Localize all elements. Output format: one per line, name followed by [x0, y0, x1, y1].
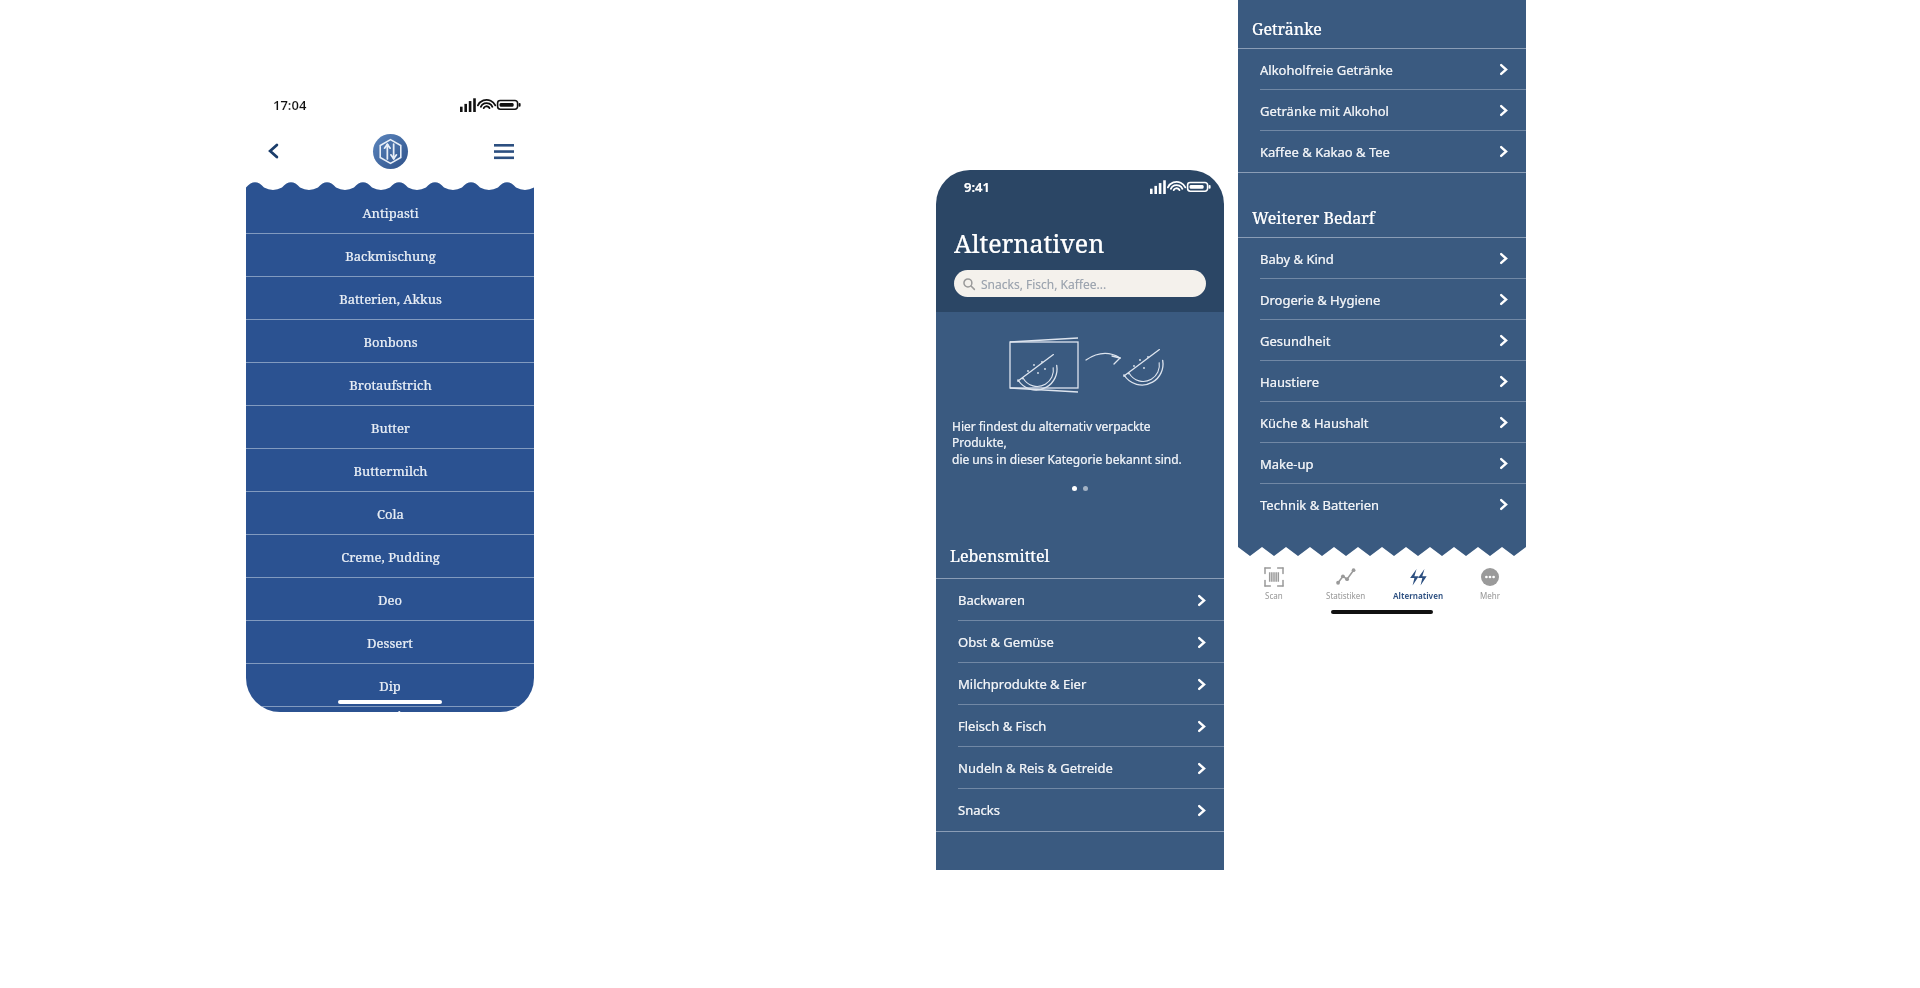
- staticText: Brotaufstrich: [349, 376, 432, 394]
- button[interactable]: Snacks, Fisch, Kaffee...: [963, 270, 1206, 297]
- button[interactable]: Dessert: [246, 621, 534, 664]
- staticText: Buttermilch: [353, 462, 428, 480]
- staticText: Haustiere: [1260, 373, 1320, 391]
- staticText: Hier findest du alternativ verpackte Pro…: [952, 418, 1208, 468]
- staticText: Alkoholfreie Getränke: [1260, 61, 1393, 79]
- staticText: Deo: [378, 591, 402, 609]
- button[interactable]: Technik & Batterien: [1238, 484, 1526, 525]
- button[interactable]: Getränke mit Alkohol: [1238, 90, 1526, 131]
- staticText: Alternativen: [954, 226, 1105, 260]
- staticText: Dip: [379, 677, 401, 695]
- button[interactable]: Drogerie & Hygiene: [1238, 279, 1526, 320]
- staticText: Batterien, Akkus: [339, 290, 442, 308]
- button[interactable]: Scan: [1238, 562, 1310, 620]
- staticText: Mehr: [1480, 590, 1501, 601]
- button[interactable]: Batterien, Akkus: [246, 277, 534, 320]
- button[interactable]: Statistiken: [1310, 562, 1382, 620]
- staticText: Cola: [377, 505, 404, 523]
- staticText: Backwaren: [958, 591, 1025, 609]
- staticText: Weiterer Bedarf: [1252, 207, 1375, 229]
- staticText: Drogerie & Hygiene: [1260, 291, 1381, 309]
- button[interactable]: Dressing: [246, 707, 534, 712]
- button[interactable]: Gesundheit: [1238, 320, 1526, 361]
- button[interactable]: Alkoholfreie Getränke: [1238, 49, 1526, 90]
- button[interactable]: Snacks: [936, 789, 1224, 831]
- staticText: Getränke mit Alkohol: [1260, 102, 1389, 120]
- staticText: Lebensmittel: [950, 545, 1050, 567]
- staticText: Backmischung: [345, 247, 436, 265]
- button[interactable]: Baby & Kind: [1238, 238, 1526, 279]
- button[interactable]: Back: [256, 133, 292, 169]
- staticText: Küche & Haushalt: [1260, 414, 1369, 432]
- staticText: Technik & Batterien: [1260, 496, 1380, 514]
- button[interactable]: Mehr: [1454, 562, 1526, 620]
- staticText: Fleisch & Fisch: [958, 717, 1047, 735]
- button[interactable]: Cola: [246, 492, 534, 535]
- button[interactable]: Antipasti: [246, 191, 534, 234]
- staticText: Nudeln & Reis & Getreide: [958, 759, 1113, 777]
- button[interactable]: Kaffee & Kakao & Tee: [1238, 131, 1526, 172]
- button[interactable]: Dip: [246, 664, 534, 707]
- staticText: Getränke: [1252, 18, 1322, 40]
- staticText: Creme, Pudding: [341, 548, 440, 566]
- button[interactable]: Menu: [486, 133, 522, 169]
- button[interactable]: Alternativen: [1382, 562, 1454, 620]
- staticText: Snacks: [958, 801, 1000, 819]
- button[interactable]: Buttermilch: [246, 449, 534, 492]
- staticText: Dressing: [363, 707, 417, 712]
- staticText: Baby & Kind: [1260, 250, 1334, 268]
- staticText: Make-up: [1260, 455, 1314, 473]
- button[interactable]: Backmischung: [246, 234, 534, 277]
- staticText: Kaffee & Kakao & Tee: [1260, 143, 1390, 161]
- staticText: 9:41: [964, 178, 990, 196]
- staticText: Alternativen: [1393, 590, 1444, 601]
- button[interactable]: Make-up: [1238, 443, 1526, 484]
- staticText: Milchprodukte & Eier: [958, 675, 1087, 693]
- button[interactable]: Deo: [246, 578, 534, 621]
- button[interactable]: Butter: [246, 406, 534, 449]
- button[interactable]: Creme, Pudding: [246, 535, 534, 578]
- button[interactable]: Nudeln & Reis & Getreide: [936, 747, 1224, 789]
- button[interactable]: Backwaren: [936, 579, 1224, 621]
- button[interactable]: Obst & Gemüse: [936, 621, 1224, 663]
- button[interactable]: [373, 134, 408, 169]
- staticText: Antipasti: [362, 204, 419, 222]
- staticText: 17:04: [273, 96, 307, 114]
- staticText: Obst & Gemüse: [958, 633, 1054, 651]
- staticText: Snacks, Fisch, Kaffee...: [981, 276, 1107, 292]
- button[interactable]: Fleisch & Fisch: [936, 705, 1224, 747]
- button[interactable]: Milchprodukte & Eier: [936, 663, 1224, 705]
- button[interactable]: Bonbons: [246, 320, 534, 363]
- button[interactable]: Brotaufstrich: [246, 363, 534, 406]
- staticText: Butter: [371, 419, 410, 437]
- staticText: Bonbons: [363, 333, 418, 351]
- button[interactable]: Küche & Haushalt: [1238, 402, 1526, 443]
- staticText: Gesundheit: [1260, 332, 1331, 350]
- staticText: Scan: [1265, 590, 1283, 601]
- staticText: Dessert: [367, 634, 413, 652]
- button[interactable]: Haustiere: [1238, 361, 1526, 402]
- staticText: Statistiken: [1326, 590, 1366, 601]
